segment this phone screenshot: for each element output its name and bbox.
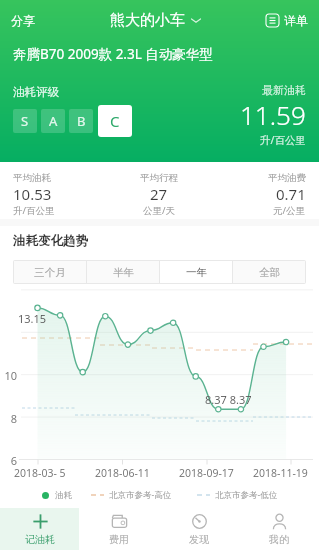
staticText: 8 — [0, 411, 17, 426]
staticText: 奔腾B70 2009款 2.3L 自动豪华型 — [13, 45, 213, 63]
button[interactable]: B — [69, 109, 93, 133]
button[interactable]: 发现 — [159, 508, 239, 550]
staticText: 平均行程 — [140, 172, 178, 184]
button[interactable]: S — [13, 109, 37, 133]
button[interactable]: A — [41, 109, 65, 133]
staticText: 0.71 — [276, 184, 306, 204]
staticText: 平均油耗 — [13, 172, 51, 184]
staticText: 熊大的小车 — [110, 11, 185, 30]
button[interactable]: 全部 — [233, 261, 305, 283]
button[interactable]: 熊大的小车 — [104, 5, 207, 36]
staticText: 11.59 — [240, 97, 306, 132]
staticText: 油耗 — [55, 490, 72, 501]
staticText: 27 — [150, 184, 168, 204]
staticText: 发现 — [189, 533, 209, 546]
staticText: 北京市参考-高位 — [109, 489, 172, 501]
staticText: B — [77, 112, 86, 130]
button[interactable]: 三个月 — [14, 261, 86, 283]
staticText: 记油耗 — [25, 533, 55, 546]
staticText: 升/百公里 — [13, 204, 55, 217]
staticText: 8.37 8.37 — [205, 392, 252, 407]
button[interactable]: 平均油费 — [208, 162, 306, 219]
staticText: 2018-06-11 — [95, 466, 150, 480]
button[interactable]: C — [98, 105, 132, 137]
staticText: 公里/天 — [143, 204, 176, 217]
button[interactable]: 半年 — [87, 261, 159, 283]
staticText: 升/百公里 — [260, 133, 306, 147]
staticText: 半年 — [113, 266, 134, 279]
staticText: 我的 — [269, 533, 289, 546]
staticText: 2018-09-17 — [179, 466, 234, 480]
staticText: 2018-03- 5 — [14, 466, 66, 480]
staticText: 油耗评级 — [13, 85, 59, 99]
button[interactable]: 分享 — [0, 4, 49, 37]
staticText: A — [49, 112, 58, 130]
button[interactable]: 我的 — [239, 508, 319, 550]
button[interactable]: 详单 — [256, 5, 319, 36]
staticText: 2018-11-19 — [253, 466, 308, 480]
staticText: 10 — [0, 368, 17, 383]
staticText: 10.53 — [13, 184, 52, 204]
button[interactable]: 平均行程 — [110, 162, 208, 219]
staticText: 费用 — [109, 533, 129, 546]
staticText: 详单 — [284, 13, 308, 28]
button[interactable]: 平均油耗 — [13, 162, 110, 219]
staticText: 北京市参考-低位 — [215, 489, 278, 501]
staticText: S — [21, 112, 29, 130]
button[interactable]: 记油耗 — [0, 508, 79, 550]
staticText: 13.15 — [18, 311, 47, 326]
staticText: 分享 — [11, 13, 35, 28]
staticText: 三个月 — [34, 266, 66, 279]
staticText: C — [110, 111, 120, 131]
button[interactable]: 一年 — [160, 261, 232, 283]
staticText: 最新油耗 — [262, 83, 306, 97]
staticText: 油耗变化趋势 — [13, 233, 88, 249]
staticText: 全部 — [259, 266, 280, 279]
staticText: 6 — [0, 453, 17, 468]
staticText: 一年 — [186, 266, 207, 279]
staticText: 平均油费 — [268, 172, 306, 184]
staticText: 元/公里 — [273, 204, 306, 217]
button[interactable]: 费用 — [79, 508, 159, 550]
